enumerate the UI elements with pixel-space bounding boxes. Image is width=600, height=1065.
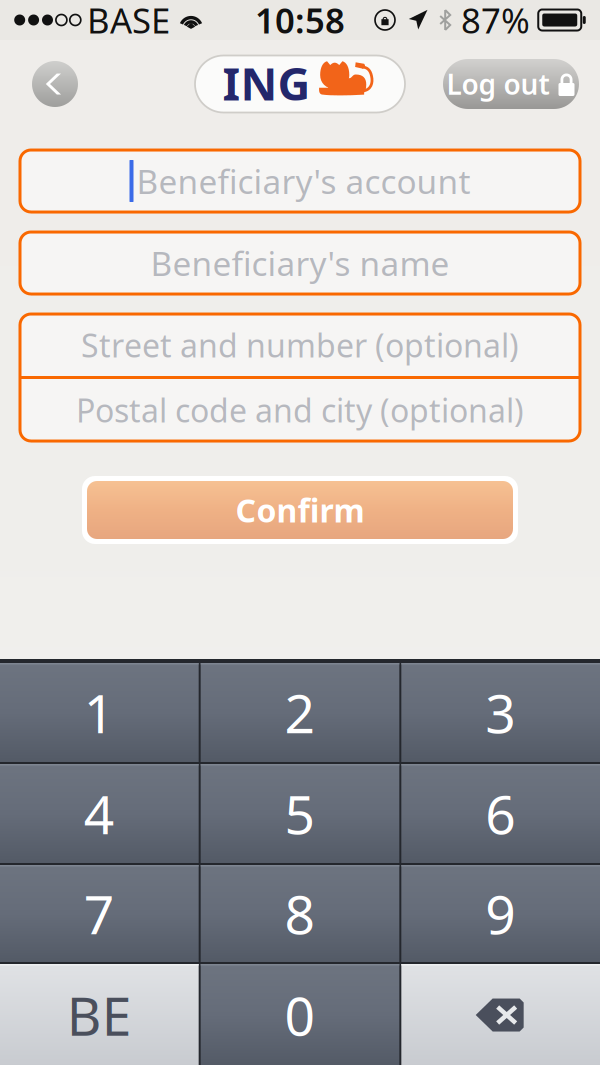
staticText: 0 — [284, 980, 315, 1050]
button[interactable]: 3 — [401, 663, 600, 762]
staticText: Confirm — [235, 489, 364, 531]
button[interactable]: Back — [26, 55, 84, 113]
button[interactable]: 4 — [0, 764, 199, 863]
staticText: 4 — [84, 778, 115, 849]
staticText: 9 — [485, 878, 516, 949]
staticText: Postal code and city (optional) — [76, 389, 524, 431]
staticText: 10:58 — [255, 0, 345, 43]
staticText: Beneficiary's account — [136, 159, 470, 203]
staticText: Street and number (optional) — [81, 324, 519, 366]
staticText: 3 — [485, 677, 516, 748]
button[interactable]: Confirm — [82, 476, 518, 544]
button[interactable]: 9 — [401, 865, 600, 962]
button[interactable]: 2 — [201, 663, 399, 762]
button[interactable]: BE — [0, 964, 199, 1065]
staticText: 6 — [485, 778, 516, 849]
staticText: 7 — [84, 878, 115, 949]
button[interactable]: Log out — [443, 59, 579, 109]
button[interactable]: 6 — [401, 764, 600, 863]
staticText: 87% — [461, 0, 530, 43]
button[interactable]: 1 — [0, 663, 199, 762]
button[interactable]: 5 — [201, 764, 399, 863]
staticText: 5 — [284, 778, 315, 849]
staticText: BE — [67, 980, 132, 1050]
staticText: BASE — [87, 0, 170, 43]
button[interactable]: 7 — [0, 865, 199, 962]
button[interactable]: 8 — [201, 865, 399, 962]
staticText: Beneficiary's name — [150, 241, 449, 285]
staticText: 2 — [284, 677, 315, 748]
button[interactable] — [401, 964, 600, 1065]
staticText: ING — [222, 53, 310, 113]
staticText: 1 — [84, 677, 115, 748]
staticText: 8 — [284, 878, 315, 949]
button[interactable]: 0 — [201, 964, 399, 1065]
staticText: Log out — [446, 65, 549, 103]
